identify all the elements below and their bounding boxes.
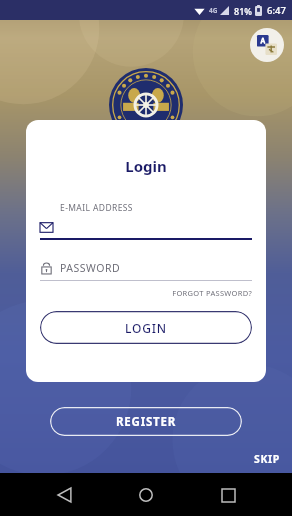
button[interactable]: SKIP <box>250 450 284 468</box>
staticText: Login <box>26 156 266 176</box>
button[interactable]: Translate <box>250 28 284 62</box>
staticText: REGISTER <box>116 414 177 430</box>
button[interactable]: REGISTER <box>50 407 242 436</box>
staticText: PASSWORD <box>60 261 121 275</box>
button[interactable]: LOGIN <box>40 311 252 344</box>
staticText: LOGIN <box>125 320 167 336</box>
staticText: E-MAIL ADDRESS <box>60 202 133 214</box>
button[interactable]: FORGOT PASSWORD? <box>40 288 252 298</box>
staticText: SKIP <box>254 452 280 466</box>
staticText: 4G <box>209 6 218 15</box>
button[interactable]: Home <box>129 478 163 512</box>
button[interactable]: Back <box>48 478 82 512</box>
button[interactable]: Recent apps <box>211 478 245 512</box>
staticText: 81% <box>234 5 252 17</box>
staticText: 6:47 <box>267 4 286 17</box>
